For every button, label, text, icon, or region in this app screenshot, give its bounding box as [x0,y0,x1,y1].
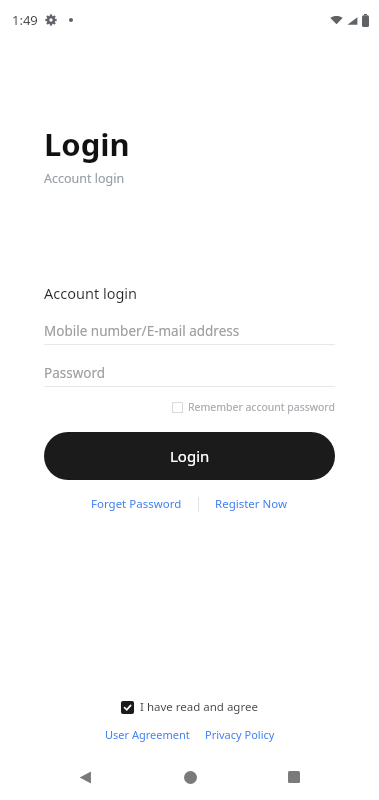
staticText: Privacy Policy [205,727,275,742]
button[interactable]: Password [44,360,335,386]
button[interactable]: Login [44,432,335,480]
staticText: Forget Password [91,496,182,512]
staticText: Remember account password [188,400,335,414]
button[interactable]: Mobile number/E-mail address [44,318,335,344]
staticText: Login [170,446,210,466]
staticText: Password [44,364,106,382]
staticText: Register Now [215,496,288,512]
button[interactable]: I have read and agree [121,699,258,715]
staticText: Account login [44,170,125,187]
staticText: Login [44,123,130,165]
staticText: I have read and agree [140,699,258,715]
button[interactable]: Back [65,757,105,797]
staticText: Mobile number/E-mail address [44,322,240,340]
staticText: Account login [44,283,138,303]
button[interactable]: Remember account password [172,400,335,414]
button[interactable]: Forget Password [83,493,190,515]
staticText: 1:49 [12,11,38,29]
staticText: User Agreement [105,727,190,742]
button[interactable]: User Agreement [101,725,194,744]
button[interactable]: Home [170,757,210,797]
button[interactable]: Recent apps [274,757,314,797]
button[interactable]: Privacy Policy [201,725,279,744]
button[interactable]: Register Now [207,493,296,515]
